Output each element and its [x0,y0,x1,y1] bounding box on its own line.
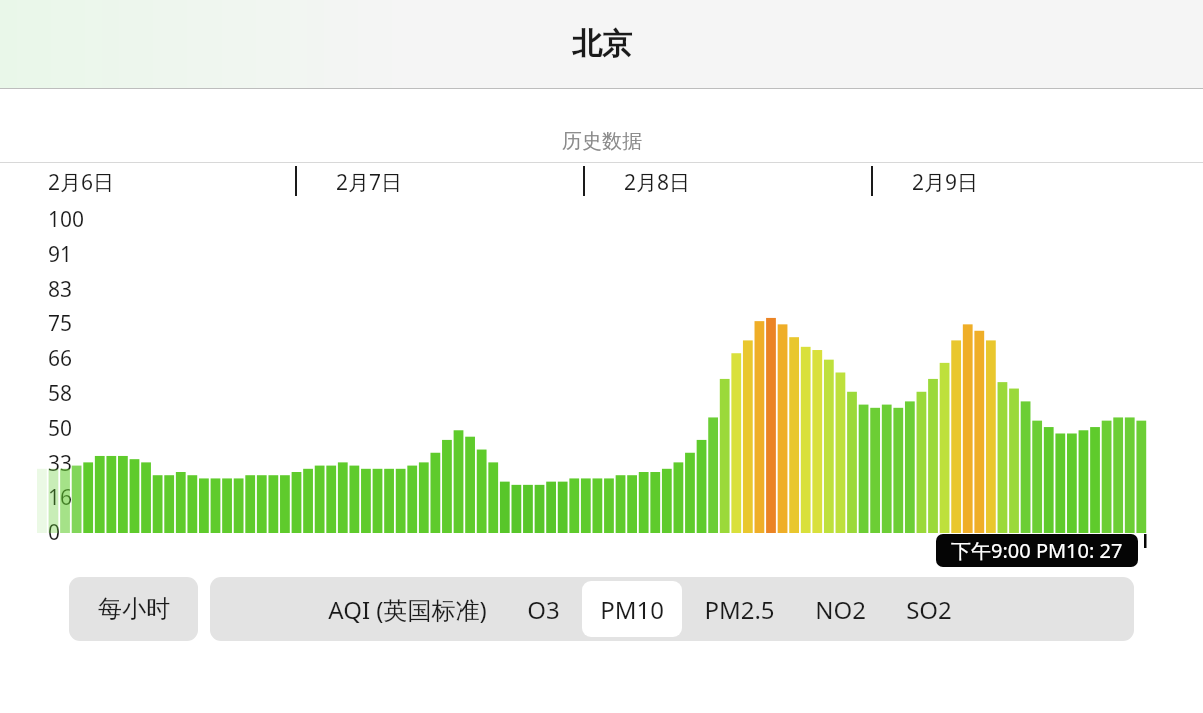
button[interactable]: NO2 [797,581,884,637]
staticText: PM10 [600,593,664,626]
button[interactable]: PM10 [582,581,682,637]
staticText: 每小时 [98,594,170,624]
staticText: 66 [48,344,73,373]
button[interactable]: SO2 [888,581,970,637]
staticText: 75 [48,309,73,338]
staticText: O3 [527,593,560,626]
button[interactable]: AQI (英国标准) [310,581,505,637]
staticText: NO2 [815,593,866,626]
staticText: 16 [48,483,73,512]
staticText: AQI (英国标准) [328,593,487,626]
staticText: 100 [48,205,85,234]
staticText: SO2 [906,593,952,626]
staticText: 83 [48,275,73,304]
button[interactable]: PM2.5 [686,581,793,637]
staticText: 33 [48,449,73,478]
staticText: 下午9:00 PM10: 27 [951,537,1123,564]
staticText: 2月7日 [336,168,403,197]
staticText: 北京 [572,25,632,63]
staticText: PM2.5 [704,593,775,626]
button[interactable]: O3 [509,581,578,637]
staticText: 0 [48,518,61,547]
staticText: 2月9日 [912,168,979,197]
staticText: 2月6日 [48,168,115,197]
staticText: 91 [48,240,73,269]
button[interactable]: 每小时 [69,577,198,641]
staticText: 2月8日 [624,168,691,197]
staticText: 58 [48,379,73,408]
staticText: 50 [48,414,73,443]
staticText: 历史数据 [562,129,642,154]
